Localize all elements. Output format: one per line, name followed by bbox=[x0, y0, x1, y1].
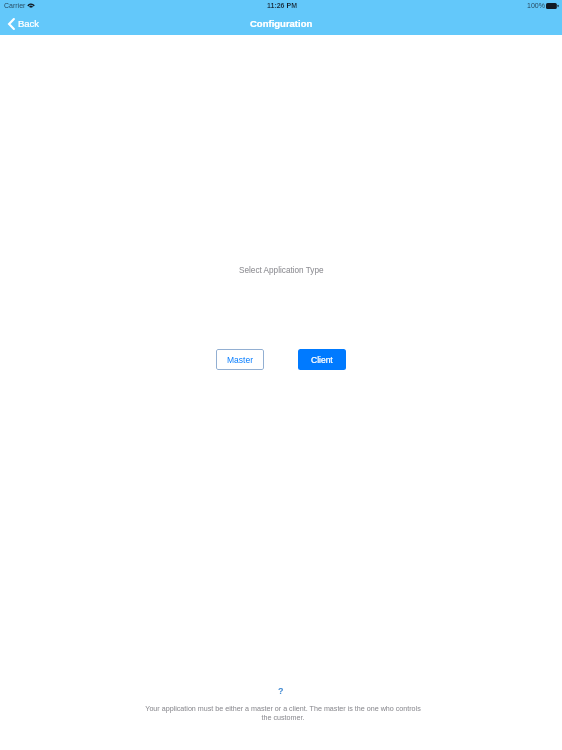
staticText: Your application must be either a master… bbox=[141, 705, 425, 722]
staticText: Back bbox=[18, 18, 40, 29]
button[interactable]: Client bbox=[298, 349, 346, 370]
button[interactable]: Help bbox=[272, 685, 290, 697]
staticText: 100% bbox=[527, 2, 545, 10]
staticText: Master bbox=[227, 355, 253, 364]
staticText: ? bbox=[278, 686, 284, 696]
staticText: Client bbox=[311, 355, 333, 364]
staticText: Carrier bbox=[4, 2, 26, 10]
button[interactable]: Master bbox=[216, 349, 264, 370]
button[interactable]: Back bbox=[0, 13, 48, 35]
staticText: Configuration bbox=[250, 18, 313, 29]
staticText: 11:26 PM bbox=[267, 2, 297, 10]
staticText: Select Application Type bbox=[239, 266, 324, 275]
